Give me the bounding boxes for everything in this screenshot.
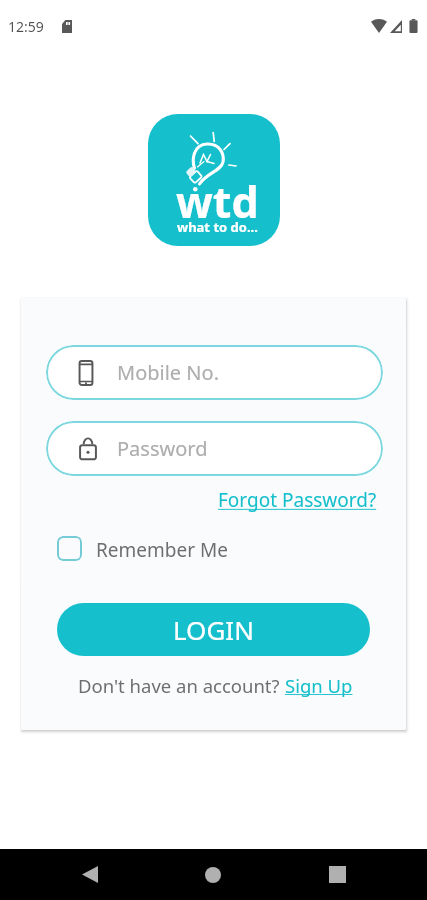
- button[interactable]: Home: [193, 849, 233, 900]
- staticText: what to do...: [177, 218, 258, 236]
- button[interactable]: Password: [46, 421, 383, 476]
- button[interactable]: Forgot Password?: [212, 481, 383, 519]
- staticText: Remember Me: [96, 537, 228, 563]
- staticText: Mobile No.: [117, 359, 219, 386]
- staticText: 12:59: [8, 17, 44, 36]
- staticText: Password: [117, 435, 208, 462]
- button[interactable]: Back: [70, 849, 110, 900]
- button[interactable]: Sign Up: [285, 673, 353, 698]
- button[interactable]: Remember Me: [57, 532, 267, 561]
- staticText: Sign Up: [285, 673, 353, 698]
- staticText: Don't have an account?: [78, 673, 285, 698]
- staticText: Forgot Password?: [218, 487, 377, 513]
- staticText: wtd: [176, 172, 259, 231]
- button[interactable]: LOGIN: [57, 603, 370, 656]
- button[interactable]: Recents: [317, 849, 357, 900]
- staticText: LOGIN: [173, 612, 254, 647]
- button[interactable]: Mobile No.: [46, 345, 383, 400]
